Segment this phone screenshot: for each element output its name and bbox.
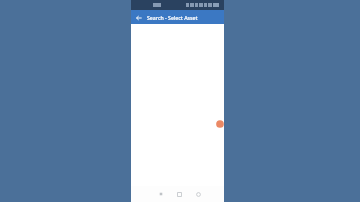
button[interactable]: Back xyxy=(134,13,143,22)
button[interactable]: Back xyxy=(151,186,170,202)
button[interactable]: Home xyxy=(170,186,189,202)
staticText: Search - Select Asset xyxy=(147,14,198,21)
button[interactable]: Recent apps xyxy=(189,186,208,202)
other: Marker xyxy=(215,119,225,129)
